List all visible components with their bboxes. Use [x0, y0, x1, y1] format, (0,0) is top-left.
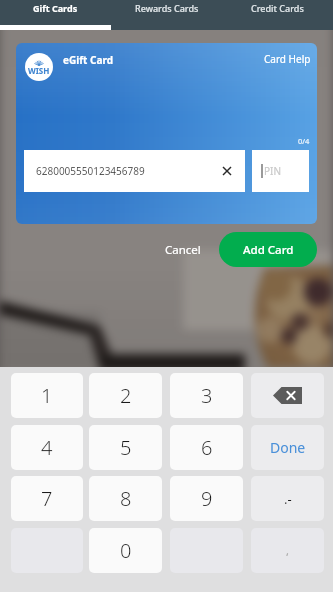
staticText: Rewards Cards	[135, 2, 199, 14]
staticText: PIN	[264, 164, 282, 178]
button[interactable]: Add Card	[219, 232, 317, 267]
staticText: 2	[120, 382, 132, 409]
staticText: 0/4	[298, 136, 310, 146]
button[interactable]: Card Help	[258, 49, 317, 69]
button[interactable]: 3	[170, 373, 243, 418]
button[interactable]: 9	[170, 476, 243, 521]
button[interactable]: 5	[89, 425, 162, 470]
button[interactable]: Credit Cards	[222, 0, 333, 25]
button[interactable]: 0	[89, 528, 162, 573]
button[interactable]: 2	[89, 373, 162, 418]
staticText: 6280005550123456789	[36, 164, 145, 178]
button[interactable]: Gift Cards	[0, 0, 111, 25]
button[interactable]: Clear	[219, 163, 235, 179]
button[interactable]: 6	[170, 425, 243, 470]
staticText: Add Card	[243, 242, 294, 258]
staticText: 3	[201, 382, 213, 409]
button[interactable]: Backspace	[251, 373, 324, 418]
button[interactable]: 4	[11, 425, 83, 470]
staticText: 6	[201, 434, 213, 461]
button[interactable]: Rewards Cards	[111, 0, 222, 25]
staticText: Card Help	[264, 52, 311, 66]
button[interactable]: Done	[251, 425, 324, 470]
button[interactable]: 7	[11, 476, 83, 521]
button[interactable]: 6280005550123456789	[24, 150, 245, 192]
staticText: 5	[120, 434, 132, 461]
button[interactable]: PIN	[252, 150, 309, 192]
staticText: 1	[41, 382, 53, 409]
staticText: Cancel	[165, 242, 201, 258]
staticText: Gift Cards	[33, 2, 78, 14]
button[interactable]: 1	[11, 373, 83, 418]
staticText: 4	[41, 434, 53, 461]
button[interactable]: Cancel	[155, 234, 211, 266]
staticText: .-	[284, 490, 292, 508]
button[interactable]: 8	[89, 476, 162, 521]
staticText: Done	[270, 438, 306, 457]
staticText: 9	[201, 485, 213, 512]
staticText: ,	[286, 543, 289, 558]
staticText: Credit Cards	[251, 2, 304, 14]
staticText: 0	[120, 537, 132, 564]
staticText: WISH	[28, 65, 50, 76]
button[interactable]: .-	[251, 476, 324, 521]
staticText: eGift Card	[63, 53, 114, 67]
staticText: 8	[120, 485, 132, 512]
staticText: 7	[41, 485, 53, 512]
